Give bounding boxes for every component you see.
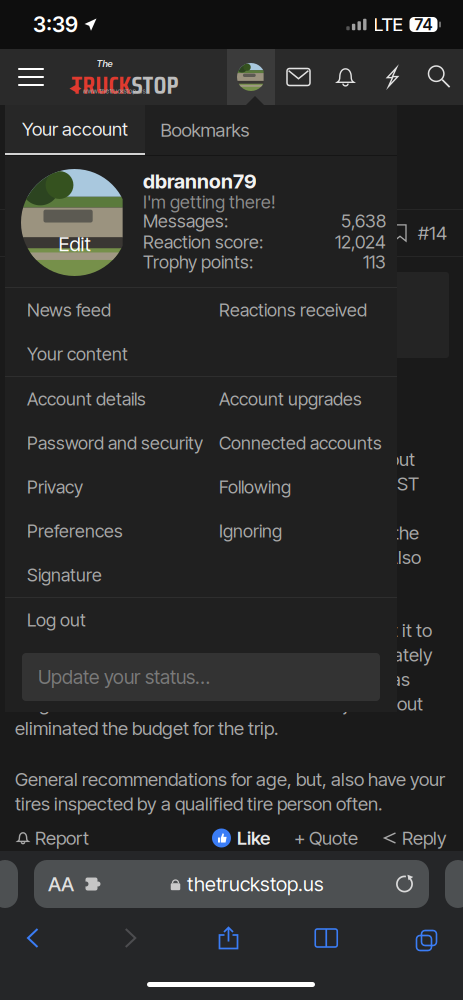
staticText: Trophy points: — [143, 251, 253, 273]
staticText: Account details — [27, 388, 146, 410]
button[interactable]: #14 — [418, 210, 463, 256]
staticText: News feed — [27, 299, 111, 321]
staticText: The — [96, 58, 112, 69]
button[interactable]: Ignoring — [219, 509, 397, 553]
staticText: Signature — [27, 564, 102, 586]
staticText: Messages: — [143, 210, 228, 232]
staticText: Ignoring — [219, 520, 282, 542]
staticText: Reactions received — [219, 299, 367, 321]
staticText: + Quote — [294, 827, 358, 849]
staticText: Your account — [22, 118, 128, 140]
staticText: thetruckstop.us — [187, 872, 324, 896]
staticText: 3:39 — [33, 12, 78, 37]
staticText: Your content — [27, 343, 128, 365]
staticText: Privacy — [27, 476, 83, 498]
staticText: tires inspected by a qualified tire pers… — [15, 792, 382, 815]
button[interactable]: Alerts — [322, 49, 369, 105]
button[interactable]: Tabs — [394, 916, 454, 960]
staticText: TRUCK — [71, 65, 131, 105]
staticText: Account upgrades — [219, 388, 362, 410]
button[interactable]: What's new — [369, 49, 416, 105]
staticText: 74 — [414, 15, 432, 34]
staticText: Like — [237, 827, 270, 849]
staticText: Connected accounts — [219, 432, 382, 454]
button[interactable]: Log out — [5, 598, 219, 642]
staticText: Log out — [27, 609, 86, 631]
staticText: 5,638 — [341, 210, 386, 232]
button[interactable]: Forward — [101, 916, 161, 960]
staticText: that my local tire store could order me … — [15, 472, 419, 495]
staticText: no good. The cost of four new trailer ti… — [15, 692, 423, 715]
staticText: Preferences — [27, 520, 123, 542]
button[interactable]: Bookmarks — [145, 105, 265, 155]
staticText: Reply — [402, 827, 447, 849]
button[interactable]: Your account — [5, 105, 145, 155]
button[interactable]: Back — [3, 916, 63, 960]
staticText: Reaction score: — [143, 231, 263, 253]
staticText: eliminated the budget for the trip. — [15, 717, 278, 740]
button[interactable]: Menu — [0, 49, 62, 105]
button[interactable]: Privacy — [5, 465, 219, 509]
staticText: General recommendations for age, but, al… — [15, 768, 445, 791]
button[interactable]: Your account — [227, 49, 275, 105]
staticText: I'm getting there! — [143, 191, 276, 213]
staticText: LTE — [373, 13, 402, 36]
staticText: STOP — [131, 65, 178, 105]
button[interactable]: Inbox — [275, 49, 322, 105]
staticText: Password and security — [27, 432, 203, 454]
button[interactable]: Reactions received — [219, 288, 397, 332]
button[interactable]: Search — [416, 49, 463, 105]
staticText: Edit — [58, 232, 90, 256]
button[interactable]: AA — [34, 860, 429, 908]
button[interactable]: Report — [0, 821, 89, 855]
button[interactable]: Connected accounts — [219, 421, 397, 465]
staticText: www.thetruckstop.us — [82, 87, 145, 95]
staticText: 12,024 — [335, 231, 386, 253]
staticText: Following — [219, 476, 291, 498]
staticText: sidewall of the tire before you leave wi… — [15, 546, 421, 569]
button[interactable]: The Truck Stop home — [62, 49, 182, 105]
button[interactable]: + Quote — [270, 821, 358, 855]
staticText: AA — [48, 872, 74, 896]
button[interactable]: Signature — [5, 553, 219, 597]
staticText: a shop to be inspected, and they told us… — [15, 643, 433, 666]
button[interactable]: Account upgrades — [219, 377, 397, 421]
staticText: Update your status… — [38, 665, 210, 689]
button[interactable]: Like — [212, 821, 270, 855]
staticText: Report — [35, 827, 89, 849]
button[interactable]: Bookmarks — [296, 916, 356, 960]
staticText: dbrannon79 — [143, 169, 257, 193]
staticText: that every one of the trailer tires on t… — [15, 668, 410, 691]
button[interactable]: Preferences — [5, 509, 219, 553]
button[interactable]: Reply — [358, 821, 463, 855]
staticText: 113 — [363, 251, 386, 273]
button[interactable]: Following — [219, 465, 397, 509]
staticText: we took the truck and the trailer in and… — [15, 619, 432, 642]
staticText: I asked around a few local tire shops an… — [15, 448, 415, 471]
staticText: always check the date code that is stamp… — [15, 521, 419, 544]
button[interactable]: Bookmark post — [382, 210, 418, 256]
button[interactable]: Update your status… — [22, 653, 380, 701]
button[interactable]: Your content — [5, 332, 219, 376]
button[interactable]: Account details — [5, 377, 219, 421]
staticText: #14 — [418, 222, 447, 244]
button[interactable]: Share — [198, 916, 258, 960]
button[interactable]: News feed — [5, 288, 219, 332]
staticText: Bookmarks — [160, 119, 249, 141]
button[interactable]: Password and security — [5, 421, 219, 465]
